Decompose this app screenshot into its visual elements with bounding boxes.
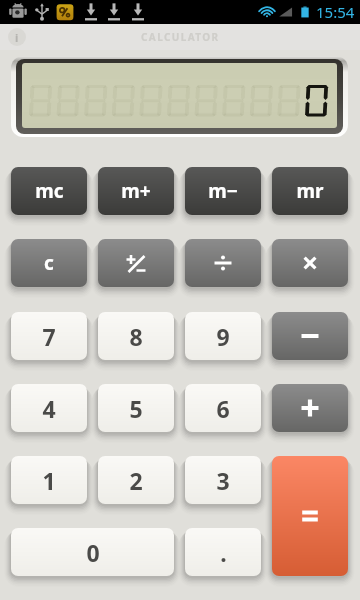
button[interactable]: 9 [185,312,261,360]
staticText: . [220,537,227,568]
button[interactable]: Multiply [272,239,348,287]
staticText: 4 [42,393,56,424]
button[interactable]: 1 [11,456,87,504]
button[interactable]: Plus minus [98,239,174,287]
button[interactable]: 3 [185,456,261,504]
staticText: 5 [129,393,143,424]
button[interactable]: Equals [272,456,348,576]
button[interactable]: 2 [98,456,174,504]
staticText: 9 [216,321,230,352]
staticText: mc [35,178,64,204]
button[interactable]: mr [272,167,348,215]
staticText: 8 [129,321,143,352]
staticText: 2 [129,465,143,496]
button[interactable]: Plus [272,384,348,432]
staticText: 3 [216,465,230,496]
button[interactable]: 8 [98,312,174,360]
staticText: i [15,30,19,45]
staticText: 15:54 [316,2,355,22]
button[interactable]: 4 [11,384,87,432]
staticText: 6 [216,393,230,424]
staticText: 0 [86,537,100,568]
button[interactable]: mc [11,167,87,215]
staticText: CALCULATOR [141,30,220,44]
button[interactable]: 6 [185,384,261,432]
button[interactable]: Divide [185,239,261,287]
staticText: m− [208,178,238,204]
button[interactable]: m− [185,167,261,215]
staticText: m+ [121,178,151,204]
button[interactable]: 0 [11,528,174,576]
button[interactable]: m+ [98,167,174,215]
button[interactable]: . [185,528,261,576]
staticText: 1 [42,465,56,496]
staticText: 7 [42,321,56,352]
button[interactable]: 7 [11,312,87,360]
staticText: mr [296,178,324,204]
button[interactable]: About [8,28,26,46]
staticText: c [44,250,54,276]
button[interactable]: Minus [272,312,348,360]
button[interactable]: c [11,239,87,287]
button[interactable]: 5 [98,384,174,432]
